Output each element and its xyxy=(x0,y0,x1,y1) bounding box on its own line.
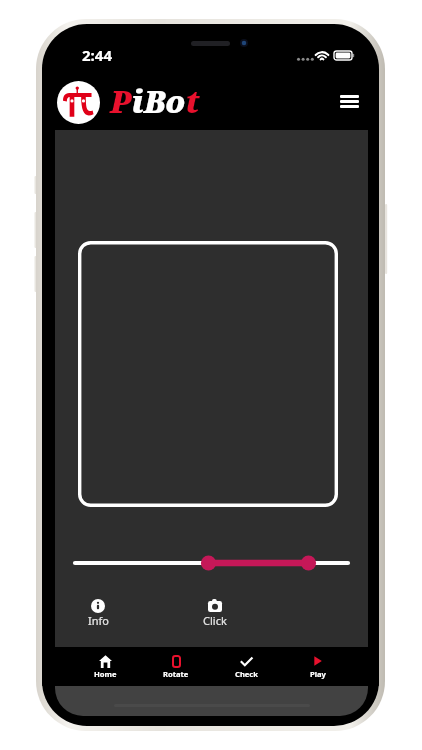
staticText: Info xyxy=(88,613,109,628)
button[interactable]: Menu xyxy=(330,82,368,120)
staticText: 2:44 xyxy=(82,45,112,65)
staticText: Check xyxy=(235,669,258,679)
button[interactable]: Home xyxy=(79,648,131,686)
staticText: Rotate xyxy=(163,669,189,679)
button[interactable]: Rotate xyxy=(150,648,202,686)
staticText: Home xyxy=(94,669,117,679)
button[interactable]: Play xyxy=(292,648,344,686)
button[interactable]: Info xyxy=(77,599,119,628)
staticText: Click xyxy=(203,613,227,628)
staticText: Play xyxy=(310,669,326,679)
button[interactable]: Check xyxy=(220,648,272,686)
button[interactable]: Click xyxy=(194,599,236,628)
staticText: PiBot xyxy=(110,80,200,122)
